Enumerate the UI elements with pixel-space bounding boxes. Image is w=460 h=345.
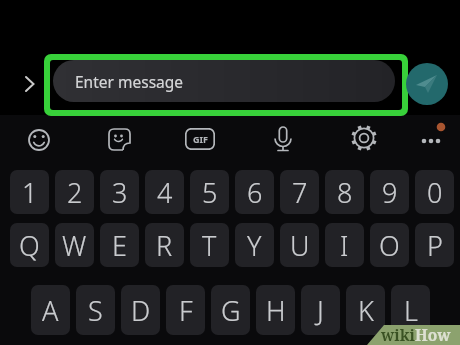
staticText: A: [42, 292, 59, 329]
staticText: S: [88, 292, 103, 329]
staticText: G: [221, 292, 241, 329]
button[interactable]: E: [100, 223, 139, 267]
staticText: Y: [247, 227, 262, 264]
button[interactable]: Y: [235, 223, 274, 267]
button[interactable]: 7: [280, 170, 319, 214]
staticText: GIF: [193, 133, 208, 145]
staticText: W: [62, 227, 87, 264]
button[interactable]: S: [76, 285, 115, 335]
staticText: R: [156, 227, 173, 264]
button[interactable]: A: [31, 285, 70, 335]
button[interactable]: K: [346, 285, 385, 335]
button[interactable]: 3: [100, 170, 139, 214]
button[interactable]: P: [415, 223, 454, 267]
button[interactable]: [263, 118, 303, 158]
button[interactable]: 2: [55, 170, 94, 214]
staticText: Enter message: [75, 71, 184, 92]
button[interactable]: 8: [325, 170, 364, 214]
staticText: H: [266, 292, 286, 329]
button[interactable]: [412, 120, 454, 160]
staticText: O: [379, 227, 400, 264]
staticText: D: [131, 292, 151, 329]
staticText: Q: [19, 227, 40, 264]
staticText: 7: [292, 174, 308, 211]
button[interactable]: [18, 70, 44, 98]
staticText: wikiHow: [381, 324, 451, 345]
button[interactable]: D: [121, 285, 160, 335]
button[interactable]: [99, 119, 139, 159]
staticText: I: [340, 227, 349, 264]
button[interactable]: 0: [415, 170, 454, 214]
staticText: 0: [427, 174, 443, 211]
button[interactable]: H: [256, 285, 295, 335]
button[interactable]: [406, 63, 448, 105]
staticText: 6: [247, 174, 263, 211]
staticText: J: [317, 292, 324, 329]
staticText: 5: [202, 174, 218, 211]
staticText: P: [427, 227, 443, 264]
staticText: 1: [22, 174, 38, 211]
button[interactable]: U: [280, 223, 319, 267]
button[interactable]: W: [55, 223, 94, 267]
staticText: 2: [67, 174, 83, 211]
button[interactable]: [342, 116, 386, 160]
staticText: L: [404, 292, 418, 329]
button[interactable]: 9: [370, 170, 409, 214]
button[interactable]: Enter message: [53, 60, 395, 102]
button[interactable]: F: [166, 285, 205, 335]
button[interactable]: 4: [145, 170, 184, 214]
button[interactable]: J: [301, 285, 340, 335]
button[interactable]: 1: [10, 170, 49, 214]
button[interactable]: [19, 120, 59, 160]
staticText: 4: [157, 174, 173, 211]
button[interactable]: 5: [190, 170, 229, 214]
button[interactable]: Q: [10, 223, 49, 267]
staticText: F: [179, 292, 193, 329]
button[interactable]: 6: [235, 170, 274, 214]
staticText: E: [112, 227, 127, 264]
button[interactable]: I: [325, 223, 364, 267]
staticText: 8: [337, 174, 353, 211]
button[interactable]: L: [391, 285, 430, 335]
staticText: U: [290, 227, 310, 264]
staticText: 9: [382, 174, 398, 211]
staticText: K: [358, 292, 374, 329]
button[interactable]: G: [211, 285, 250, 335]
button[interactable]: O: [370, 223, 409, 267]
button[interactable]: GIF: [185, 128, 215, 150]
button[interactable]: T: [190, 223, 229, 267]
staticText: 3: [112, 174, 128, 211]
button[interactable]: R: [145, 223, 184, 267]
staticText: T: [202, 227, 217, 264]
